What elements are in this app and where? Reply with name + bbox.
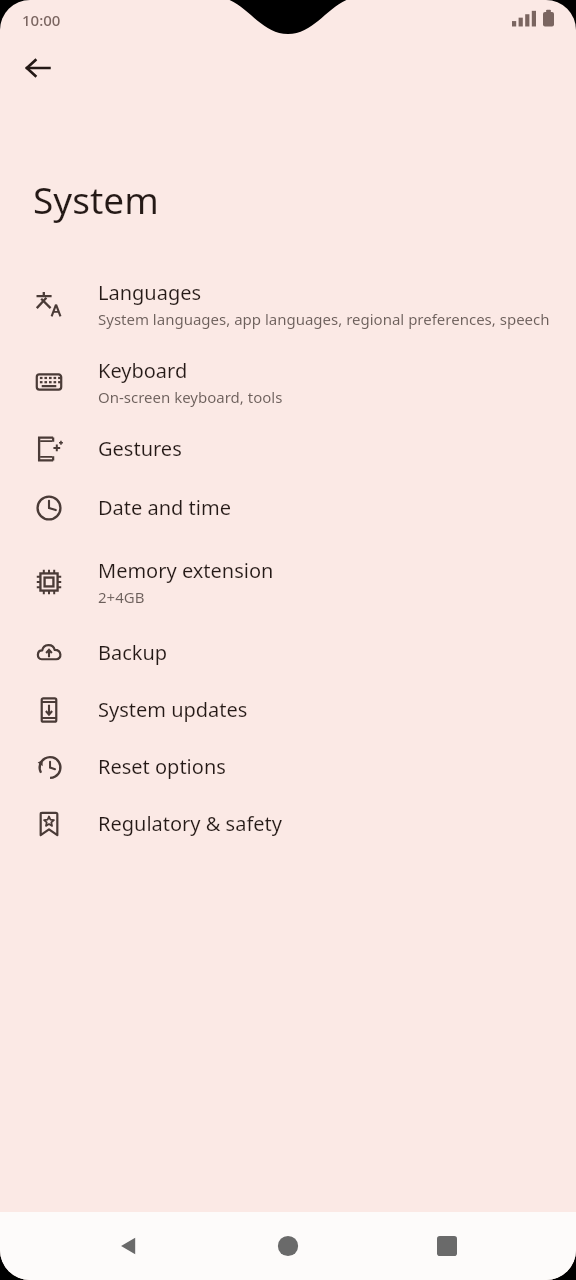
button[interactable]: Languages <box>0 276 576 332</box>
button[interactable]: Date and time <box>0 491 576 524</box>
staticText: 2+4GB <box>98 587 145 607</box>
button[interactable]: Recent apps <box>417 1216 477 1276</box>
staticText: On-screen keyboard, tools <box>98 387 283 407</box>
button[interactable]: Back <box>12 42 64 94</box>
staticText: Reset options <box>98 753 226 780</box>
button[interactable]: Keyboard <box>0 354 576 410</box>
staticText: Regulatory & safety <box>98 810 282 837</box>
staticText: Gestures <box>98 435 182 462</box>
staticText: Backup <box>98 639 168 666</box>
button[interactable]: Memory extension <box>0 554 576 610</box>
staticText: 10:00 <box>22 10 61 30</box>
staticText: System languages, app languages, regiona… <box>98 309 550 329</box>
staticText: System updates <box>98 696 248 723</box>
staticText: Languages <box>98 279 202 306</box>
button[interactable]: Backup <box>0 636 576 669</box>
staticText: Memory extension <box>98 557 274 584</box>
button[interactable]: Back <box>99 1216 159 1276</box>
staticText: System <box>33 174 159 224</box>
button[interactable]: Gestures <box>0 432 576 465</box>
staticText: Keyboard <box>98 357 188 384</box>
button[interactable]: System updates <box>0 693 576 726</box>
button[interactable]: Reset options <box>0 750 576 783</box>
button[interactable]: Regulatory & safety <box>0 807 576 840</box>
staticText: Date and time <box>98 494 231 521</box>
button[interactable]: Home <box>258 1216 318 1276</box>
